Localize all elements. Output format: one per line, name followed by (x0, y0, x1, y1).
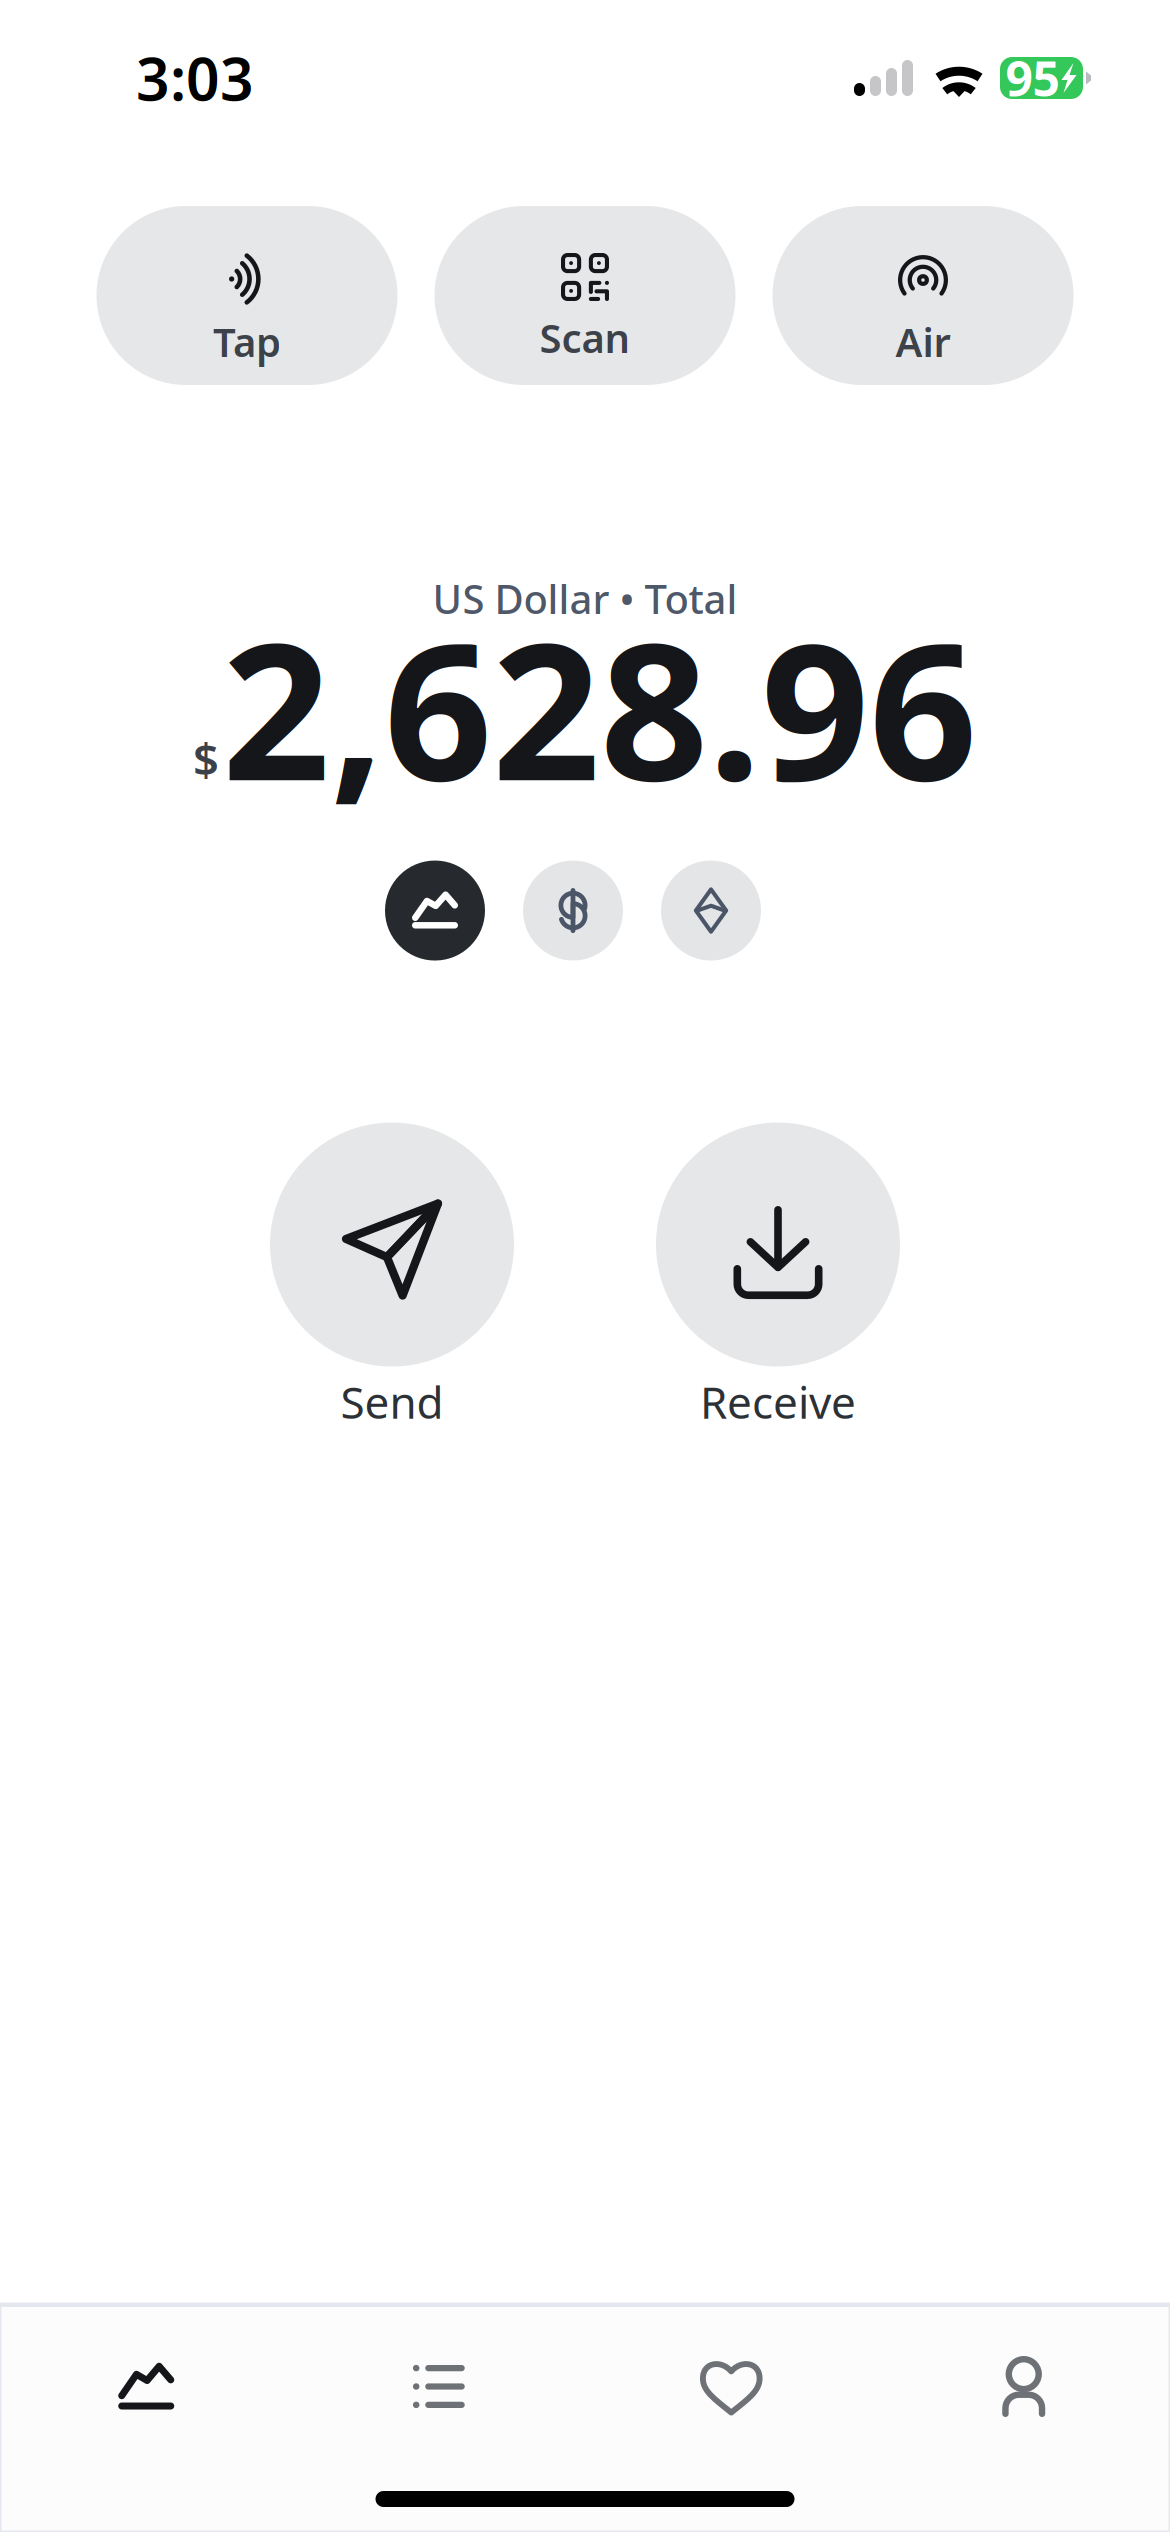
staticText: Send (340, 1372, 443, 1431)
button[interactable]: Favorites (585, 2307, 877, 2444)
button[interactable]: Ethereum (661, 860, 761, 960)
staticText: 3:03 (136, 39, 254, 117)
button[interactable]: Total (385, 860, 485, 960)
button[interactable]: US Dollar (523, 860, 623, 960)
staticText: 95 (1005, 46, 1059, 110)
staticText: $ (193, 728, 219, 788)
button[interactable]: Air (772, 206, 1073, 385)
button[interactable]: Scan (434, 206, 735, 385)
button[interactable]: Tap (96, 206, 397, 385)
staticText: Scan (539, 311, 630, 364)
button[interactable]: Profile (877, 2307, 1170, 2444)
staticText: US Dollar • Total (432, 572, 737, 625)
button[interactable]: Send (270, 1122, 514, 1431)
button[interactable]: List (292, 2307, 585, 2444)
button[interactable]: Chart (0, 2307, 292, 2444)
staticText: Receive (700, 1372, 856, 1431)
staticText: 2,628.96 (222, 581, 977, 832)
staticText: Tap (213, 315, 281, 368)
button[interactable]: Receive (656, 1122, 900, 1431)
staticText: Air (895, 315, 950, 368)
